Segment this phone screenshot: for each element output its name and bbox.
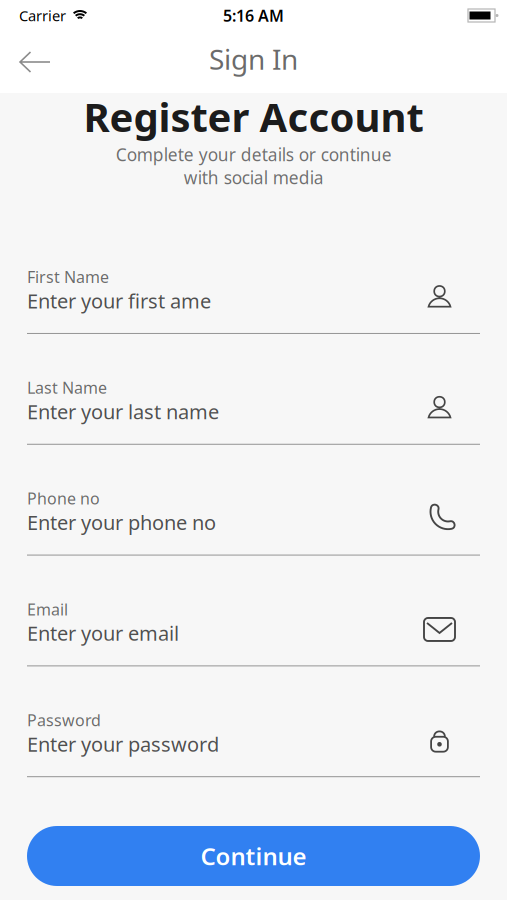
staticText: Enter your last name xyxy=(27,398,219,425)
button[interactable]: Email xyxy=(27,599,480,666)
button[interactable]: Back xyxy=(0,36,50,88)
staticText: Enter your first ame xyxy=(27,287,211,314)
staticText: Enter your password xyxy=(27,731,219,757)
staticText: Enter your phone no xyxy=(27,509,216,536)
staticText: Last Name xyxy=(27,377,107,398)
staticText: Register Account xyxy=(83,90,423,143)
staticText: Email xyxy=(27,599,68,620)
staticText: 5:16 AM xyxy=(223,5,284,26)
staticText: First Name xyxy=(27,266,109,287)
staticText: Complete your details or continue with s… xyxy=(115,143,391,189)
staticText: Carrier xyxy=(19,6,66,25)
staticText: Sign In xyxy=(209,40,298,78)
button[interactable]: Password xyxy=(27,709,480,777)
staticText: Enter your email xyxy=(27,620,179,646)
staticText: Password xyxy=(27,709,101,731)
staticText: Continue xyxy=(200,840,306,872)
button[interactable]: Last Name xyxy=(27,377,480,445)
button[interactable]: First Name xyxy=(27,266,480,334)
button[interactable]: Continue xyxy=(27,826,480,886)
staticText: Phone no xyxy=(27,488,100,509)
button[interactable]: Phone no xyxy=(27,488,480,556)
